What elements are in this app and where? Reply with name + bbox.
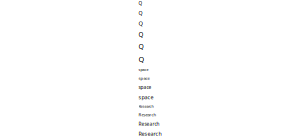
staticText: space <box>138 75 149 81</box>
staticText: Q <box>138 19 142 27</box>
staticText: space <box>138 84 151 90</box>
staticText: Research <box>138 121 159 127</box>
staticText: Research <box>138 130 161 137</box>
staticText: Q <box>138 42 143 51</box>
staticText: Q <box>138 0 142 6</box>
staticText: Research <box>138 104 153 109</box>
staticText: Q <box>138 54 144 64</box>
staticText: Q <box>138 9 142 16</box>
staticText: Research <box>138 112 156 118</box>
staticText: space <box>138 93 153 101</box>
staticText: space <box>138 67 148 72</box>
staticText: Q <box>138 30 143 39</box>
